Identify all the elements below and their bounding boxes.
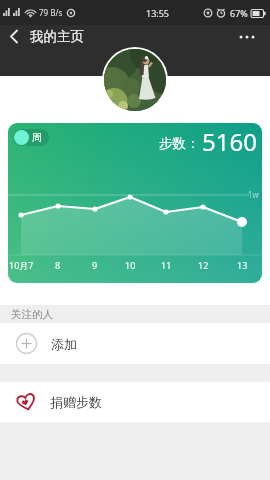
staticText: 79 B/s bbox=[39, 7, 63, 18]
staticText: 67% bbox=[230, 7, 248, 19]
staticText: 10 bbox=[125, 259, 136, 271]
staticText: 13:55 bbox=[146, 7, 170, 19]
staticText: 周 bbox=[32, 131, 42, 144]
staticText: 11 bbox=[161, 259, 172, 271]
button[interactable]: 捐赠步数 bbox=[0, 382, 270, 422]
staticText: 添加 bbox=[51, 336, 77, 352]
staticText: 12 bbox=[198, 259, 209, 271]
staticText: 关注的人 bbox=[11, 308, 53, 321]
staticText: 10月7 bbox=[9, 259, 34, 271]
staticText: 9 bbox=[92, 259, 98, 271]
button[interactable]: 周 bbox=[13, 129, 49, 146]
staticText: 捐赠步数 bbox=[50, 394, 102, 410]
staticText: 1w bbox=[248, 189, 259, 200]
button[interactable] bbox=[231, 25, 263, 48]
staticText: 步数： bbox=[159, 135, 200, 152]
button[interactable] bbox=[102, 47, 168, 113]
staticText: 8 bbox=[55, 259, 61, 271]
button[interactable]: 添加 bbox=[0, 323, 270, 364]
staticText: 13 bbox=[237, 259, 248, 271]
staticText: 我的主页 bbox=[30, 28, 84, 45]
staticText: 5160 bbox=[202, 125, 257, 158]
button[interactable] bbox=[0, 25, 28, 48]
